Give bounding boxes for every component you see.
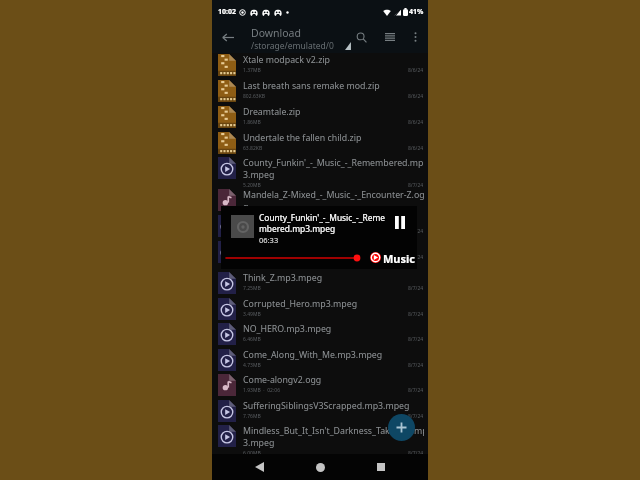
staticText: SufferingSiblingsV3Scrapped.mp3.mpeg — [243, 400, 410, 412]
button[interactable]: Home — [306, 454, 334, 480]
staticText: Mandela_Z-Mixed_-_Music_-_Encounter-Z.og — [243, 189, 424, 201]
button[interactable]: Last breath sans remake mod.zip — [212, 79, 428, 105]
button[interactable]: Megalo_Strike_Back.mp3.mpeg — [212, 240, 428, 271]
staticText: /storage/emulated/0 — [251, 40, 334, 52]
staticText: 4.81MB — [243, 228, 261, 235]
button[interactable]: Xtale modpack v2.zip — [212, 53, 428, 79]
staticText: County_Funkin'_-_Music_-_Reme — [259, 212, 385, 223]
staticText: 41% — [409, 7, 424, 17]
button[interactable]: Sort — [379, 26, 401, 48]
staticText: County_Funkin'_-_Music_-_Remembered.mp — [243, 157, 424, 169]
staticText: 1.93MB · 02:06 — [243, 387, 281, 394]
staticText: 8/7/24 — [408, 228, 424, 235]
staticText: 8/6/24 — [408, 93, 424, 100]
button[interactable]: County_Funkin'_-_Music_-_Remembered.mp — [212, 156, 428, 188]
staticText: Megalo_Strike_Back.mp3.mpeg — [243, 241, 373, 253]
staticText: 8/6/24 — [408, 145, 424, 152]
staticText: g — [243, 201, 249, 213]
staticText: 6.00MB — [243, 450, 261, 455]
staticText: 8/7/24 — [408, 336, 424, 343]
staticText: 3.mpeg — [243, 169, 275, 181]
staticText: 3.mpeg — [243, 437, 275, 449]
button[interactable]: Undertale the fallen child.zip — [212, 131, 428, 156]
button[interactable]: Add — [388, 414, 415, 441]
button[interactable]: Corrupted_Hero.mp3.mpeg — [212, 297, 428, 322]
button[interactable]: Recents — [367, 454, 395, 480]
button[interactable]: NO_HERO.mp3.mpeg — [212, 322, 428, 348]
staticText: 8/7/24 — [408, 285, 424, 292]
staticText: Corrupted_Hero.mp3.mpeg — [243, 298, 358, 310]
staticText: Disbelief_Papyrus.mp3.mpeg — [243, 215, 364, 227]
button[interactable]: County_Funkin'_-_Music_-_Reme — [221, 206, 417, 269]
button[interactable]: Come-alongv2.ogg — [212, 373, 428, 399]
staticText: Come-alongv2.ogg — [243, 374, 322, 386]
staticText: 3.49MB — [243, 311, 261, 318]
button[interactable]: More options — [405, 27, 425, 47]
staticText: 8/7/24 — [408, 254, 424, 261]
staticText: 8/7/24 — [408, 362, 424, 369]
staticText: 4.73MB — [243, 362, 261, 369]
staticText: 6.46MB — [243, 336, 261, 343]
staticText: Dreamtale.zip — [243, 106, 301, 118]
button[interactable]: Disbelief_Papyrus.mp3.mpeg — [212, 214, 428, 240]
staticText: Xtale modpack v2.zip — [243, 54, 330, 66]
button[interactable]: Mindless_But_It_Isn't_Darkness_Takeover.… — [212, 424, 428, 455]
staticText: 8/7/24 — [408, 450, 424, 455]
staticText: Think_Z.mp3.mpeg — [243, 272, 323, 284]
staticText: 8/7/24 — [408, 413, 424, 420]
staticText: Download — [251, 26, 301, 40]
staticText: 5.20MB — [243, 182, 261, 188]
staticText: 802.63KB — [243, 93, 265, 100]
staticText: mbered.mp3.mpeg — [259, 223, 336, 234]
staticText: Last breath sans remake mod.zip — [243, 80, 380, 92]
staticText: Come_Along_With_Me.mp3.mpeg — [243, 349, 383, 361]
button[interactable]: Back — [212, 21, 244, 53]
staticText: Mindless_But_It_Isn't_Darkness_Takeover.… — [243, 425, 424, 437]
staticText: Music — [383, 251, 416, 263]
button[interactable]: Dreamtale.zip — [212, 105, 428, 131]
staticText: 63.82KB — [243, 145, 263, 152]
staticText: 8/6/24 — [408, 67, 424, 74]
button[interactable]: Come_Along_With_Me.mp3.mpeg — [212, 348, 428, 373]
staticText: 7.76MB — [243, 413, 261, 420]
staticText: 8/7/24 — [408, 387, 424, 394]
button[interactable]: SufferingSiblingsV3Scrapped.mp3.mpeg — [212, 399, 428, 424]
staticText: 5.12MB — [243, 254, 261, 261]
button[interactable]: Back — [245, 454, 273, 480]
staticText: 06:33 — [259, 235, 279, 245]
staticText: 7.25MB — [243, 285, 261, 292]
staticText: 1.86MB — [243, 119, 261, 126]
staticText: 8/7/24 — [408, 182, 424, 188]
button[interactable]: Search — [350, 26, 372, 48]
staticText: 10:02 — [218, 7, 236, 17]
staticText: Undertale the fallen child.zip — [243, 132, 362, 144]
staticText: 8/6/24 — [408, 119, 424, 126]
button[interactable]: Think_Z.mp3.mpeg — [212, 271, 428, 297]
staticText: 8/7/24 — [408, 311, 424, 318]
button[interactable]: Pause — [389, 211, 411, 233]
staticText: NO_HERO.mp3.mpeg — [243, 323, 332, 335]
button[interactable]: Mandela_Z-Mixed_-_Music_-_Encounter-Z.og — [212, 188, 428, 214]
staticText: 1.37MB — [243, 67, 261, 74]
